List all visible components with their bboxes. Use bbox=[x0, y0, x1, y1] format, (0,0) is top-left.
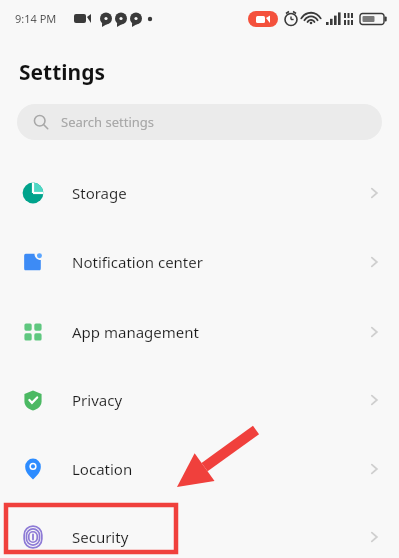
button[interactable]: Storage bbox=[0, 167, 399, 219]
staticText: 9:14 PM bbox=[15, 11, 57, 26]
button[interactable]: Privacy bbox=[0, 374, 399, 426]
staticText: Settings bbox=[19, 58, 106, 87]
button[interactable]: Location bbox=[0, 443, 399, 495]
button[interactable]: Security bbox=[0, 511, 399, 558]
staticText: Storage bbox=[72, 183, 127, 203]
staticText: Security bbox=[72, 527, 129, 547]
button[interactable]: Notification center bbox=[0, 236, 399, 288]
staticText: Location bbox=[72, 459, 133, 479]
staticText: Notification center bbox=[72, 252, 203, 272]
staticText: App management bbox=[72, 322, 199, 342]
button[interactable]: App management bbox=[0, 306, 399, 358]
staticText: Privacy bbox=[72, 390, 123, 410]
button[interactable]: Search settings bbox=[17, 104, 382, 140]
staticText: Search settings bbox=[61, 113, 155, 131]
